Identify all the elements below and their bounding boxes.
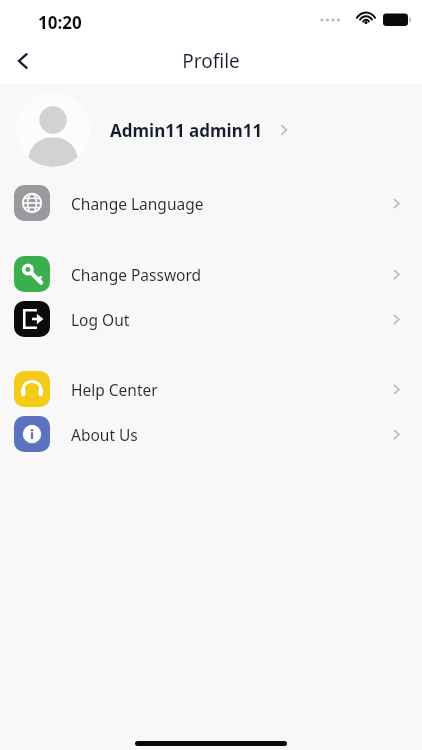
staticText: Log Out xyxy=(71,309,130,330)
button[interactable]: Back xyxy=(4,42,42,80)
staticText: Change Password xyxy=(71,264,202,285)
button[interactable]: Change Language xyxy=(0,185,422,221)
button[interactable]: Change Password xyxy=(0,256,422,292)
button[interactable]: Log Out xyxy=(0,301,422,337)
staticText: Change Language xyxy=(71,193,204,214)
staticText: 10:20 xyxy=(38,11,82,34)
button[interactable]: About Us xyxy=(0,416,422,452)
staticText: About Us xyxy=(71,424,138,445)
button[interactable]: Help Center xyxy=(0,371,422,407)
button[interactable]: Admin11 admin11 xyxy=(0,84,422,176)
staticText: Profile xyxy=(0,48,422,74)
staticText: Help Center xyxy=(71,379,158,400)
staticText: Admin11 admin11 xyxy=(110,119,263,142)
